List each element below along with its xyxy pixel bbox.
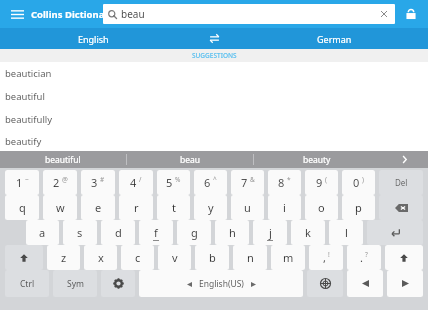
staticText: d (115, 225, 122, 240)
button[interactable]: m (271, 245, 305, 270)
staticText: 5 (166, 175, 173, 190)
button[interactable]: 6 (194, 170, 227, 195)
button[interactable]: Lock (400, 3, 422, 25)
button[interactable]: 8 (268, 170, 301, 195)
staticText: i (283, 200, 286, 215)
button[interactable]: Swap languages (187, 28, 241, 49)
staticText: * (287, 175, 291, 184)
button[interactable]: s (63, 220, 97, 245)
staticText: t (172, 200, 176, 215)
button[interactable]: 5 (157, 170, 190, 195)
button[interactable]: x (84, 245, 117, 270)
staticText: beautiful (5, 90, 45, 103)
staticText: English (78, 33, 109, 45)
button[interactable]: 7 (231, 170, 264, 195)
staticText: c (135, 250, 141, 265)
button[interactable]: i (268, 195, 301, 220)
staticText: 1 (16, 175, 23, 190)
button[interactable]: beau (103, 4, 395, 24)
staticText: beautician (5, 67, 52, 80)
button[interactable]: u (231, 195, 264, 220)
staticText: # (100, 175, 105, 184)
staticText: beautifully (5, 113, 53, 126)
button[interactable]: k (291, 220, 325, 245)
button[interactable]: More suggestions (380, 151, 428, 168)
staticText: % (175, 175, 181, 184)
button[interactable]: Cursor right (387, 270, 423, 297)
staticText: ! (328, 250, 330, 259)
staticText: @ (62, 175, 68, 184)
button[interactable]: Change language (307, 270, 343, 297)
button[interactable]: w (43, 195, 77, 220)
button[interactable]: beauty (254, 151, 380, 168)
staticText: j (269, 225, 272, 240)
button[interactable]: p (342, 195, 375, 220)
staticText: w (56, 200, 65, 215)
button[interactable]: . (347, 245, 381, 270)
staticText: beauty (303, 154, 331, 166)
button[interactable]: beautify (0, 131, 428, 151)
button[interactable]: Ctrl (5, 270, 49, 297)
staticText: beau (180, 154, 201, 166)
staticText: z (61, 250, 67, 265)
button[interactable]: b (195, 245, 229, 270)
button[interactable]: English (0, 28, 187, 49)
staticText: s (77, 225, 83, 240)
staticText: n (247, 250, 254, 265)
button[interactable]: q (5, 195, 39, 220)
button[interactable]: Sym (53, 270, 97, 297)
button[interactable]: Shift (385, 245, 423, 270)
button[interactable]: beau (127, 151, 253, 168)
staticText: beautiful (45, 154, 81, 166)
button[interactable]: o (305, 195, 338, 220)
button[interactable]: 1 (5, 170, 39, 195)
staticText: k (305, 225, 311, 240)
staticText: , (323, 250, 326, 265)
button[interactable]: 0 (342, 170, 375, 195)
button[interactable]: Shift (5, 245, 43, 270)
button[interactable]: , (309, 245, 343, 270)
button[interactable]: l (329, 220, 363, 245)
button[interactable]: v (158, 245, 191, 270)
button[interactable]: e (81, 195, 115, 220)
button[interactable]: Space (139, 270, 303, 297)
staticText: 7 (241, 175, 248, 190)
button[interactable]: f (139, 220, 173, 245)
button[interactable]: 4 (119, 170, 153, 195)
staticText: g (191, 225, 198, 240)
button[interactable]: Settings (101, 270, 135, 297)
staticText: m (283, 250, 294, 265)
button[interactable]: g (177, 220, 211, 245)
staticText: 6 (204, 175, 211, 190)
button[interactable]: Cursor left (347, 270, 383, 297)
button[interactable]: r (119, 195, 153, 220)
staticText: Sym (67, 278, 84, 290)
staticText: 9 (316, 175, 323, 190)
button[interactable]: beautiful (0, 85, 428, 108)
staticText: r (134, 200, 139, 215)
button[interactable]: n (233, 245, 267, 270)
button[interactable]: Delete (379, 170, 423, 195)
button[interactable]: Clear (377, 7, 391, 21)
button[interactable]: h (215, 220, 249, 245)
staticText: English(US) (199, 278, 244, 290)
button[interactable]: j (253, 220, 287, 245)
staticText: y (208, 200, 214, 215)
button[interactable]: beautiful (0, 151, 126, 168)
button[interactable]: 3 (81, 170, 115, 195)
button[interactable]: d (101, 220, 135, 245)
button[interactable]: c (121, 245, 154, 270)
button[interactable]: Backspace (379, 195, 423, 220)
button[interactable]: Enter (367, 220, 423, 245)
button[interactable]: beautician (0, 62, 428, 85)
button[interactable]: 2 (43, 170, 77, 195)
staticText: 0 (353, 175, 360, 190)
button[interactable]: beautifully (0, 108, 428, 131)
button[interactable]: 9 (305, 170, 338, 195)
button[interactable]: z (47, 245, 80, 270)
button[interactable]: t (157, 195, 190, 220)
button[interactable]: y (194, 195, 227, 220)
button[interactable]: Menu (6, 3, 28, 25)
button[interactable]: German (241, 28, 428, 49)
button[interactable]: a (26, 220, 59, 245)
